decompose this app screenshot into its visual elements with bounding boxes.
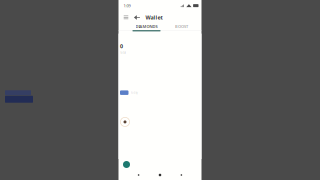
button[interactable]: Back [131, 14, 142, 21]
button[interactable]: BOOST [171, 23, 191, 30]
button[interactable]: Menu [120, 14, 131, 21]
button[interactable]: DIAMONDS [132, 23, 160, 30]
staticText: Total [120, 51, 126, 54]
staticText: BOOST [175, 24, 188, 29]
staticText: DIAMONDS [135, 24, 157, 29]
button[interactable]: Chat [122, 160, 130, 168]
staticText: 1:09 [123, 3, 130, 8]
button[interactable]: COIN [197, 23, 215, 30]
staticText: Today [130, 91, 137, 94]
staticText: Wallet [145, 14, 162, 21]
staticText: 0 [120, 43, 123, 50]
